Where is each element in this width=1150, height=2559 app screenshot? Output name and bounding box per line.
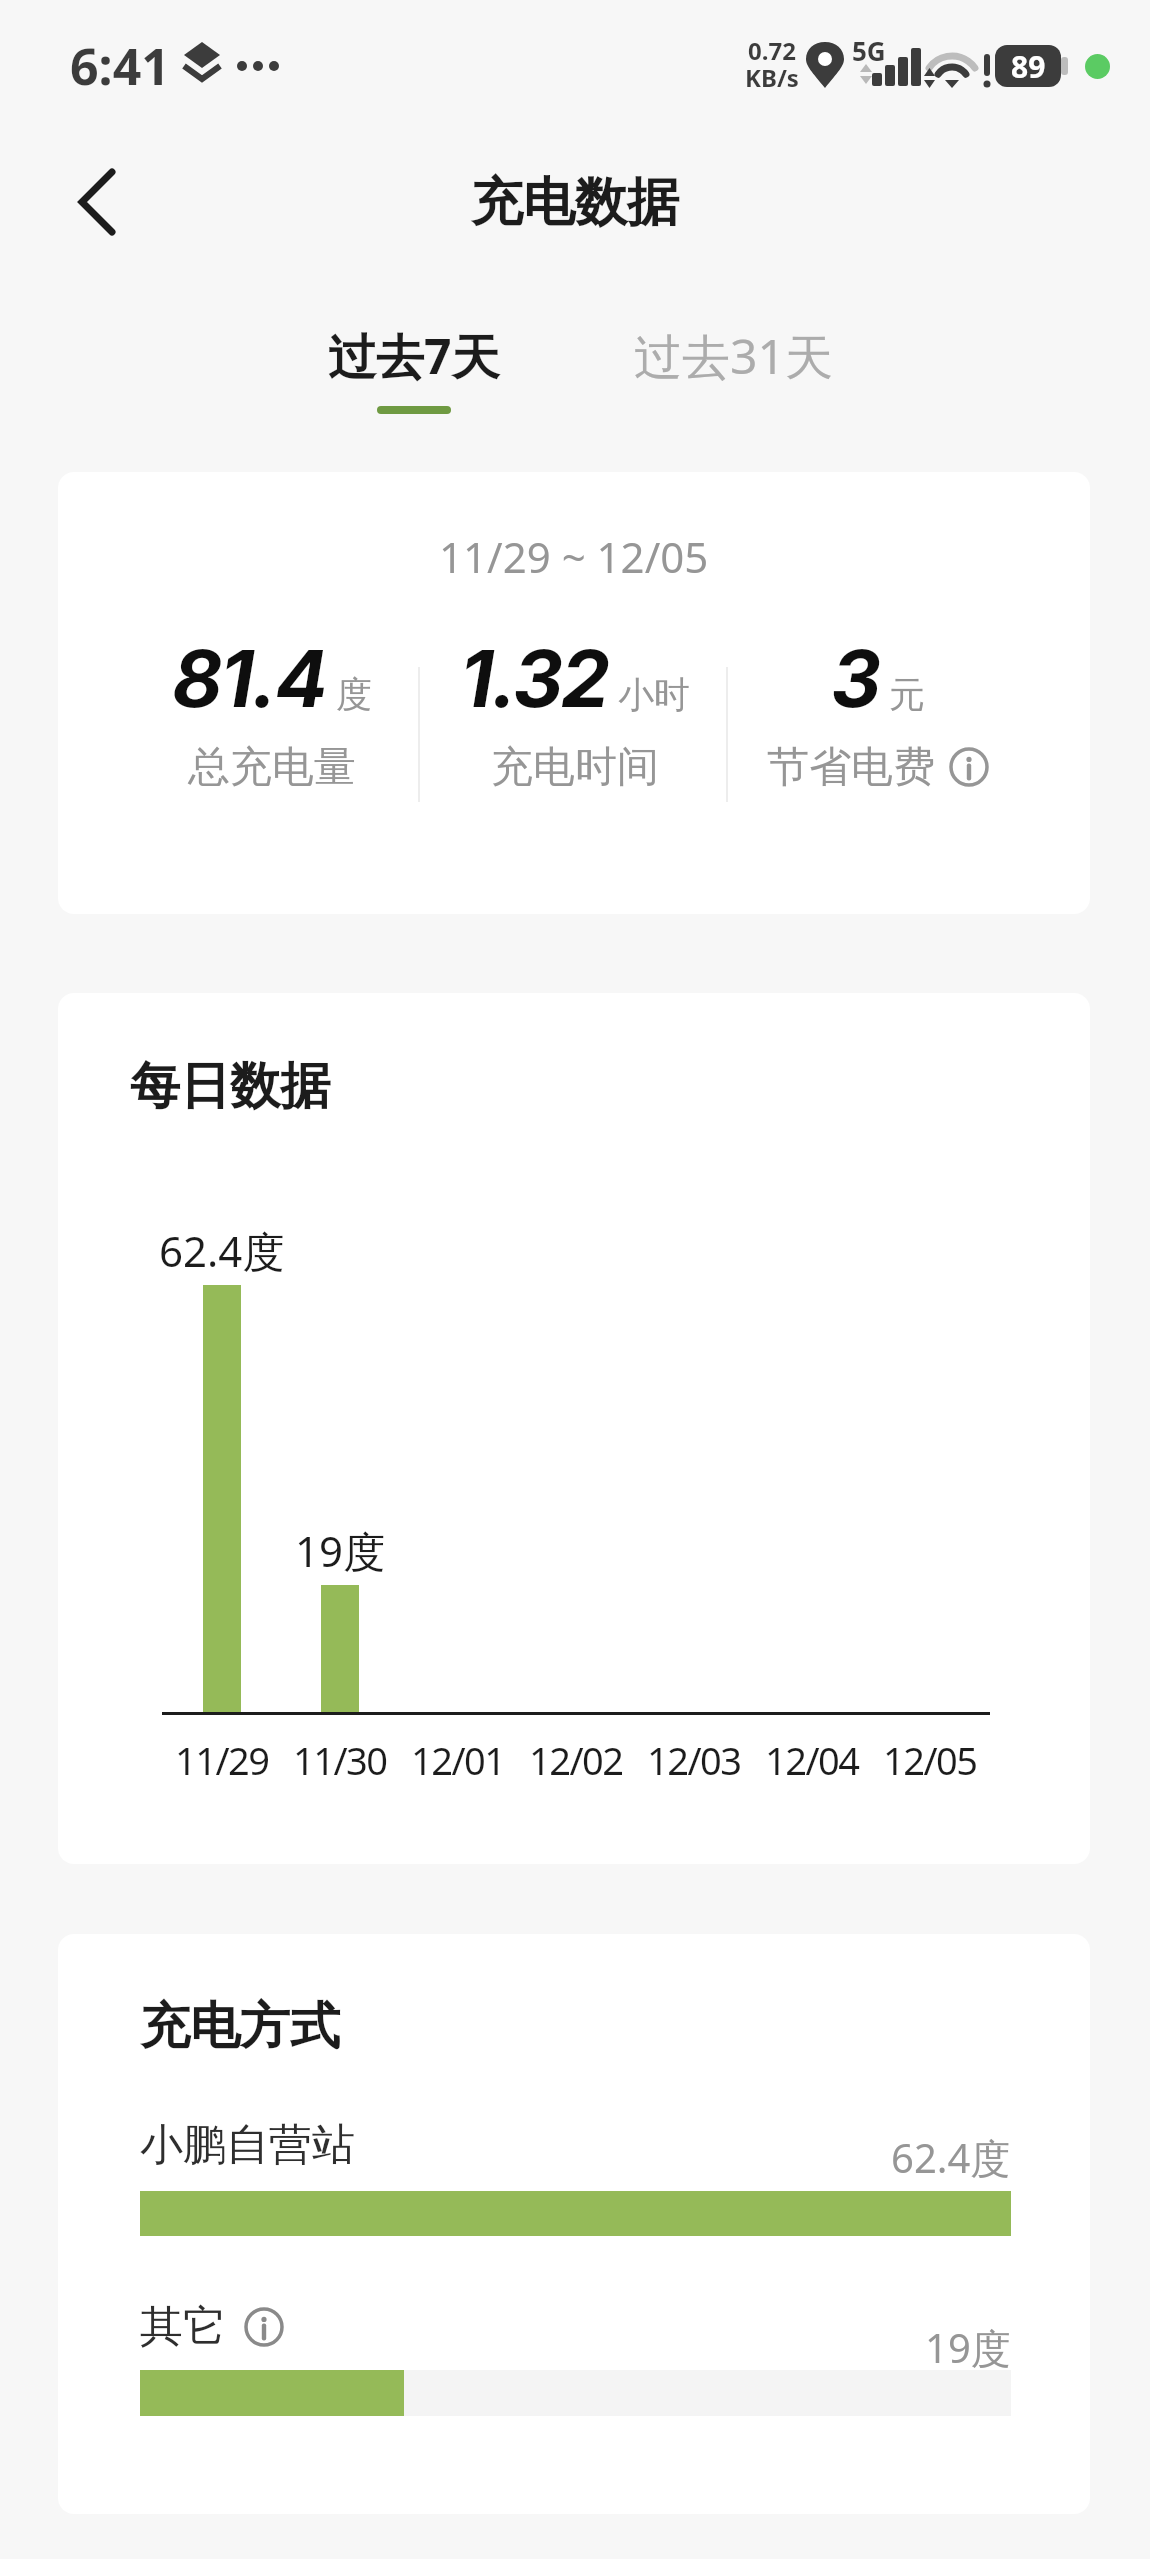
staticText: 1.32 (460, 631, 608, 725)
staticText: 6:41 (70, 32, 170, 100)
staticText: 11/29 (175, 1734, 269, 1786)
button[interactable] (60, 160, 140, 250)
staticText: 19度 (295, 1522, 386, 1579)
staticText: 11/30 (293, 1734, 387, 1786)
staticText: 节省电费 (767, 741, 935, 794)
staticText: 89 (1011, 46, 1046, 87)
staticText: 每日数据 (130, 1055, 330, 1118)
staticText: 12/03 (647, 1734, 741, 1786)
staticText: 充电数据 (471, 170, 679, 236)
staticText: 11/29 ~ 12/05 (439, 528, 709, 585)
staticText: 小时 (618, 672, 690, 717)
staticText: 12/04 (765, 1734, 859, 1786)
staticText: 62.4度 (159, 1222, 285, 1279)
staticText: 0.72 (748, 34, 796, 67)
staticText: 小鹏自营站 (140, 2118, 355, 2172)
button[interactable]: 过去31天 (608, 318, 858, 414)
staticText: 过去31天 (634, 323, 833, 389)
staticText: 62.4度 (891, 2130, 1011, 2185)
button[interactable] (949, 747, 989, 787)
staticText: 12/01 (411, 1734, 505, 1786)
staticText: 总充电量 (188, 741, 356, 794)
staticText: 81.4 (172, 631, 326, 725)
staticText: 3 (831, 631, 879, 725)
staticText: 12/02 (529, 1734, 623, 1786)
button[interactable]: 过去7天 (289, 318, 539, 414)
button[interactable] (244, 2307, 284, 2347)
staticText: 元 (889, 672, 925, 717)
staticText: 充电方式 (140, 1995, 340, 2058)
staticText: KB/s (745, 61, 799, 94)
staticText: 12/05 (883, 1734, 977, 1786)
staticText: 度 (336, 672, 372, 717)
staticText: 19度 (925, 2320, 1011, 2375)
staticText: 其它 (140, 2300, 226, 2354)
staticText: 充电时间 (491, 741, 659, 794)
staticText: 过去7天 (328, 323, 500, 389)
staticText: 5G (852, 33, 886, 68)
